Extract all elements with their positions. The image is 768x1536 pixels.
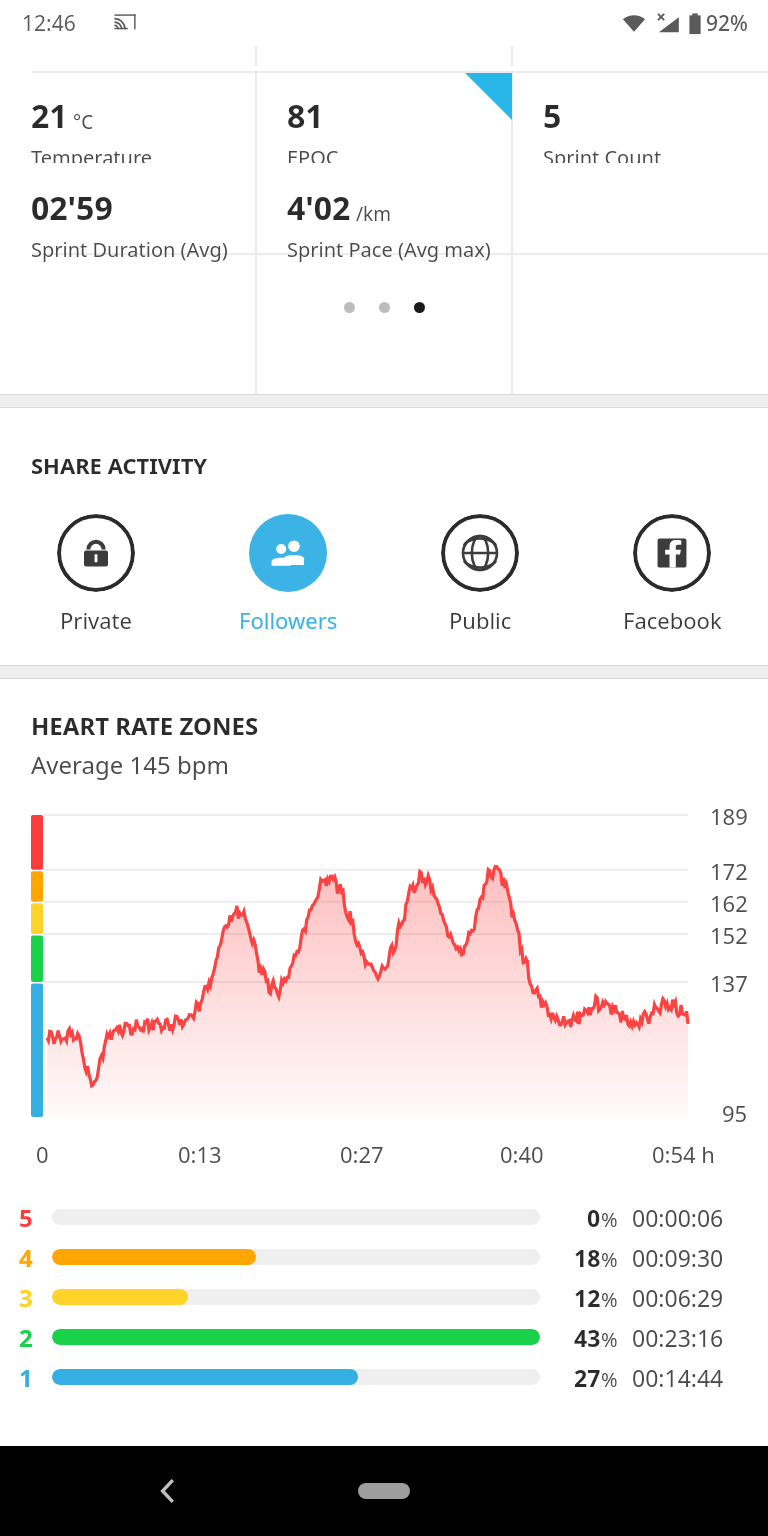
button[interactable]: 3 <box>0 1277 768 1317</box>
staticText: 0:27 <box>340 1139 384 1169</box>
staticText: 4 <box>19 1241 33 1274</box>
staticText: 00:06:29 <box>632 1282 724 1313</box>
button[interactable]: 1 <box>0 1357 768 1397</box>
staticText: 5 <box>19 1201 33 1234</box>
staticText: EPOC <box>287 144 339 163</box>
staticText: 0 <box>587 1202 601 1233</box>
staticText: 12 <box>574 1282 601 1313</box>
staticText: % <box>601 1326 618 1353</box>
staticText: 137 <box>710 968 748 998</box>
staticText: 43 <box>574 1322 601 1353</box>
button[interactable]: Back <box>140 1463 196 1519</box>
button[interactable]: 4 <box>0 1237 768 1277</box>
staticText: 00:23:16 <box>632 1322 724 1353</box>
staticText: 00:00:06 <box>632 1202 724 1233</box>
other: Private <box>57 514 135 592</box>
staticText: 4'02 <box>287 186 351 230</box>
staticText: % <box>601 1206 618 1233</box>
staticText: % <box>601 1246 618 1273</box>
staticText: Public <box>449 605 512 635</box>
button[interactable]: Followers <box>192 512 384 637</box>
staticText: 189 <box>710 801 748 831</box>
staticText: % <box>601 1366 618 1393</box>
staticText: SHARE ACTIVITY <box>31 450 208 480</box>
staticText: 3 <box>19 1281 33 1314</box>
other: Public <box>441 514 519 592</box>
staticText: 00:14:44 <box>632 1362 724 1393</box>
button[interactable]: Public <box>384 512 576 637</box>
staticText: 92% <box>706 9 748 38</box>
other: Followers <box>249 514 327 592</box>
button[interactable]: Facebook <box>576 512 768 637</box>
staticText: 27 <box>574 1362 601 1393</box>
staticText: 00:09:30 <box>632 1242 724 1273</box>
button[interactable]: 2 <box>0 1317 768 1357</box>
staticText: Temperature <box>31 144 153 163</box>
staticText: HEART RATE ZONES <box>31 709 259 742</box>
staticText: 18 <box>574 1242 601 1273</box>
other: Facebook <box>633 514 711 592</box>
staticText: % <box>601 1286 618 1313</box>
staticText: Facebook <box>623 605 722 635</box>
staticText: Followers <box>239 605 338 635</box>
staticText: °C <box>73 109 94 135</box>
staticText: 95 <box>722 1098 748 1128</box>
staticText: 0:13 <box>178 1139 222 1169</box>
staticText: 0 <box>36 1139 49 1169</box>
staticText: 5 <box>543 94 562 138</box>
staticText: 152 <box>710 920 748 950</box>
staticText: 21 <box>31 94 68 138</box>
staticText: Sprint Pace (Avg max) <box>287 236 491 263</box>
staticText: 0:54 h <box>652 1139 715 1169</box>
staticText: 0:40 <box>500 1139 544 1169</box>
button[interactable]: Private <box>0 512 192 637</box>
button[interactable]: 5 <box>0 1197 768 1237</box>
staticText: /km <box>356 201 391 227</box>
staticText: Sprint Count <box>543 144 662 163</box>
staticText: 02'59 <box>31 186 113 230</box>
staticText: Sprint Duration (Avg) <box>31 236 228 263</box>
staticText: 2 <box>19 1321 33 1354</box>
staticText: 1 <box>19 1361 33 1394</box>
staticText: 81 <box>287 94 324 138</box>
staticText: 172 <box>710 856 748 886</box>
staticText: 162 <box>710 888 748 918</box>
staticText: Average 145 bpm <box>31 748 229 781</box>
button[interactable]: Home <box>334 1463 434 1519</box>
staticText: 12:46 <box>22 9 76 38</box>
staticText: Private <box>60 605 132 635</box>
